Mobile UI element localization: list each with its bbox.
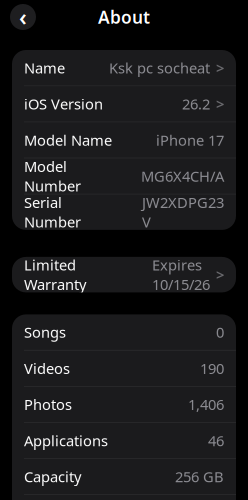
button[interactable]: Videos bbox=[12, 350, 236, 386]
staticText: Applications bbox=[24, 431, 108, 450]
button[interactable]: Name bbox=[12, 50, 236, 85]
staticText: Model Name bbox=[24, 130, 112, 150]
staticText: Ksk pc socheat bbox=[109, 58, 210, 77]
staticText: iPhone 17 bbox=[156, 130, 224, 150]
staticText: Name bbox=[24, 58, 65, 77]
staticText: > bbox=[216, 265, 224, 284]
button[interactable]: Capacity bbox=[12, 459, 236, 494]
staticText: 1,406 bbox=[188, 395, 224, 414]
button[interactable]: Serial Number bbox=[12, 194, 236, 230]
staticText: > bbox=[216, 94, 224, 114]
staticText: MG6X4CH/A bbox=[141, 166, 224, 186]
staticText: 256 GB bbox=[175, 467, 224, 486]
staticText: Limited Warranty bbox=[24, 255, 86, 294]
button[interactable]: Applications bbox=[12, 423, 236, 458]
staticText: Songs bbox=[24, 322, 66, 342]
staticText: About bbox=[98, 5, 150, 28]
staticText: Model Number bbox=[24, 157, 81, 196]
staticText: 0 bbox=[216, 322, 224, 342]
staticText: 190 bbox=[200, 358, 224, 378]
staticText: Capacity bbox=[24, 467, 81, 486]
staticText: Photos bbox=[24, 395, 72, 414]
staticText: ‹ bbox=[19, 2, 27, 32]
button[interactable]: Model Number bbox=[12, 158, 236, 194]
staticText: Videos bbox=[24, 358, 70, 378]
button[interactable]: Photos bbox=[12, 387, 236, 422]
button[interactable]: Songs bbox=[12, 314, 236, 350]
button[interactable]: Limited Warranty bbox=[12, 257, 236, 292]
button[interactable]: iOS Version bbox=[12, 86, 236, 122]
staticText: 26.2 bbox=[182, 94, 210, 114]
staticText: 46 bbox=[208, 431, 224, 450]
staticText: Serial Number bbox=[24, 193, 81, 232]
staticText: iOS Version bbox=[24, 94, 103, 114]
button[interactable]: Back bbox=[10, 4, 36, 30]
staticText: > bbox=[216, 58, 224, 77]
staticText: Expires 10/15/26 bbox=[152, 255, 210, 294]
staticText: JW2XDPG23V bbox=[142, 193, 224, 232]
button[interactable]: Model Name bbox=[12, 122, 236, 158]
